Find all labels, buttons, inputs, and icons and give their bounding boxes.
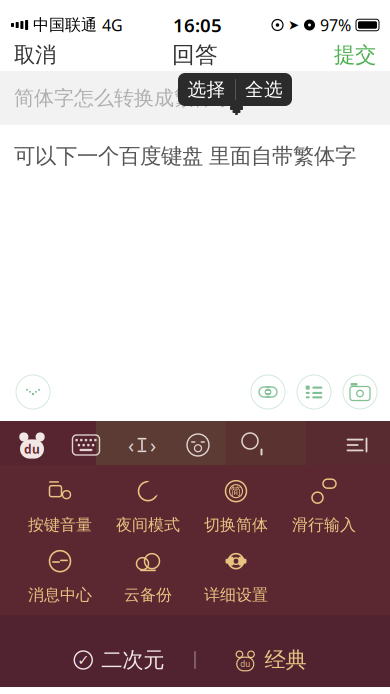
staticText: › (150, 432, 156, 458)
staticText: 消息中心 (28, 585, 92, 605)
staticText: 二次元 (101, 647, 164, 673)
staticText: 回答 (172, 41, 218, 69)
button[interactable]: 取消 (0, 33, 70, 77)
button[interactable]: 夜间模式 (104, 475, 192, 537)
staticText: 可以下一个百度键盘 里面自带繁体字 (14, 143, 356, 169)
button[interactable]: 插入图片 (343, 375, 377, 409)
button[interactable]: 更多功能 (334, 423, 380, 467)
staticText: 详细设置 (204, 585, 268, 605)
staticText: 按键音量 (28, 515, 92, 535)
staticText: 云备份 (124, 585, 172, 605)
button[interactable]: 云备份 (104, 545, 192, 607)
button[interactable]: 表情 (170, 423, 226, 467)
staticText: 全选 (245, 78, 283, 101)
button[interactable]: 收起键盘 (16, 375, 50, 409)
button[interactable]: 选择 (178, 73, 235, 106)
button[interactable]: 消息中心 (16, 545, 104, 607)
staticText: 选择 (187, 78, 225, 101)
staticText: 滑行输入 (292, 515, 356, 535)
staticText: 4G (102, 14, 123, 36)
staticText: 切换简体 (204, 515, 268, 535)
button[interactable]: 按键音量 (16, 475, 104, 537)
staticText: ➤ (288, 17, 299, 32)
button[interactable]: 匿名回答 (251, 375, 285, 409)
staticText: 中国联通 (33, 15, 97, 35)
button[interactable]: 全选 (236, 73, 292, 106)
staticText: 取消 (14, 42, 56, 68)
staticText: 16:05 (173, 13, 222, 37)
button[interactable]: ✓ (44, 637, 194, 683)
staticText: du (240, 659, 250, 669)
staticText: 97% (320, 14, 351, 36)
button[interactable]: du (196, 637, 346, 683)
button[interactable]: 搜索 (226, 423, 282, 467)
staticText: 简 (230, 485, 241, 498)
button[interactable]: 光标移动 (114, 423, 170, 467)
button[interactable]: 简 (192, 475, 280, 537)
staticText: 夜间模式 (116, 515, 180, 535)
staticText: du (24, 441, 40, 457)
staticText: ✓ (77, 652, 89, 668)
button[interactable]: 详细设置 (192, 545, 280, 607)
button[interactable]: 百度输入法 (6, 423, 58, 467)
staticText: 简体字怎么转换成繁体字 (14, 86, 234, 110)
button[interactable]: 滑行输入 (280, 475, 368, 537)
staticText: ‹ (128, 432, 134, 458)
button[interactable]: 插入大纲 (297, 375, 331, 409)
staticText: 提交 (334, 42, 376, 68)
button[interactable]: 键盘 (58, 423, 114, 467)
staticText: 经典 (264, 647, 306, 673)
button[interactable]: 提交 (320, 33, 390, 77)
